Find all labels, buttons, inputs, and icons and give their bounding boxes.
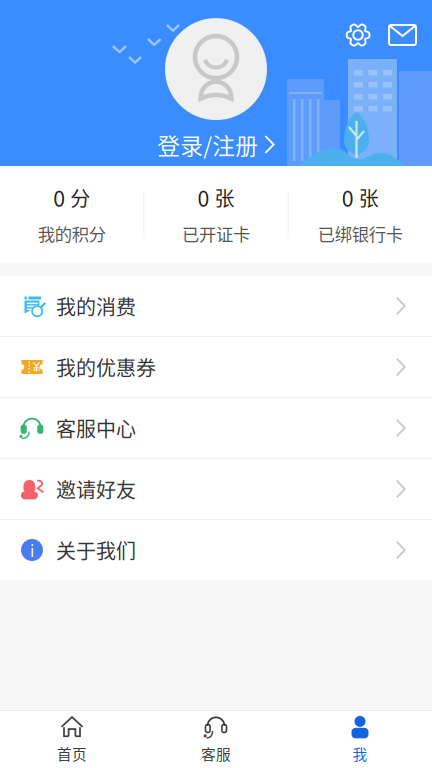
button[interactable]: 我的优惠券: [0, 337, 432, 398]
staticText: 0: [197, 182, 209, 213]
button[interactable]: 0: [289, 166, 432, 263]
staticText: 已绑银行卡: [318, 221, 403, 246]
staticText: 关于我们: [56, 535, 136, 564]
button[interactable]: 邀请好友: [0, 459, 432, 520]
staticText: 0: [342, 182, 354, 213]
button[interactable]: 客服中心: [0, 398, 432, 459]
button[interactable]: 设置: [345, 22, 371, 48]
button[interactable]: 消息: [389, 25, 416, 45]
staticText: 已开证卡: [182, 221, 250, 246]
button[interactable]: i: [0, 520, 432, 580]
button[interactable]: 0: [0, 166, 143, 263]
staticText: 分: [70, 183, 90, 212]
button[interactable]: 我的消费: [0, 276, 432, 337]
button[interactable]: 首页: [0, 713, 144, 765]
staticText: 首页: [57, 743, 87, 764]
staticText: i: [30, 538, 34, 562]
staticText: 登录/注册: [157, 128, 258, 161]
staticText: 我的积分: [38, 221, 106, 246]
button[interactable]: 0: [144, 166, 288, 263]
staticText: 邀请好友: [56, 474, 136, 503]
button[interactable]: 客服: [144, 713, 288, 765]
staticText: 我的消费: [56, 291, 136, 320]
staticText: 我的优惠券: [56, 352, 156, 381]
staticText: 客服: [201, 743, 231, 764]
button[interactable]: 我: [288, 713, 432, 765]
staticText: 张: [359, 183, 379, 212]
staticText: 张: [214, 183, 234, 212]
staticText: 客服中心: [56, 413, 136, 442]
staticText: 0: [53, 182, 65, 213]
staticText: 我: [352, 743, 367, 764]
button[interactable]: 登录/注册: [157, 128, 275, 161]
